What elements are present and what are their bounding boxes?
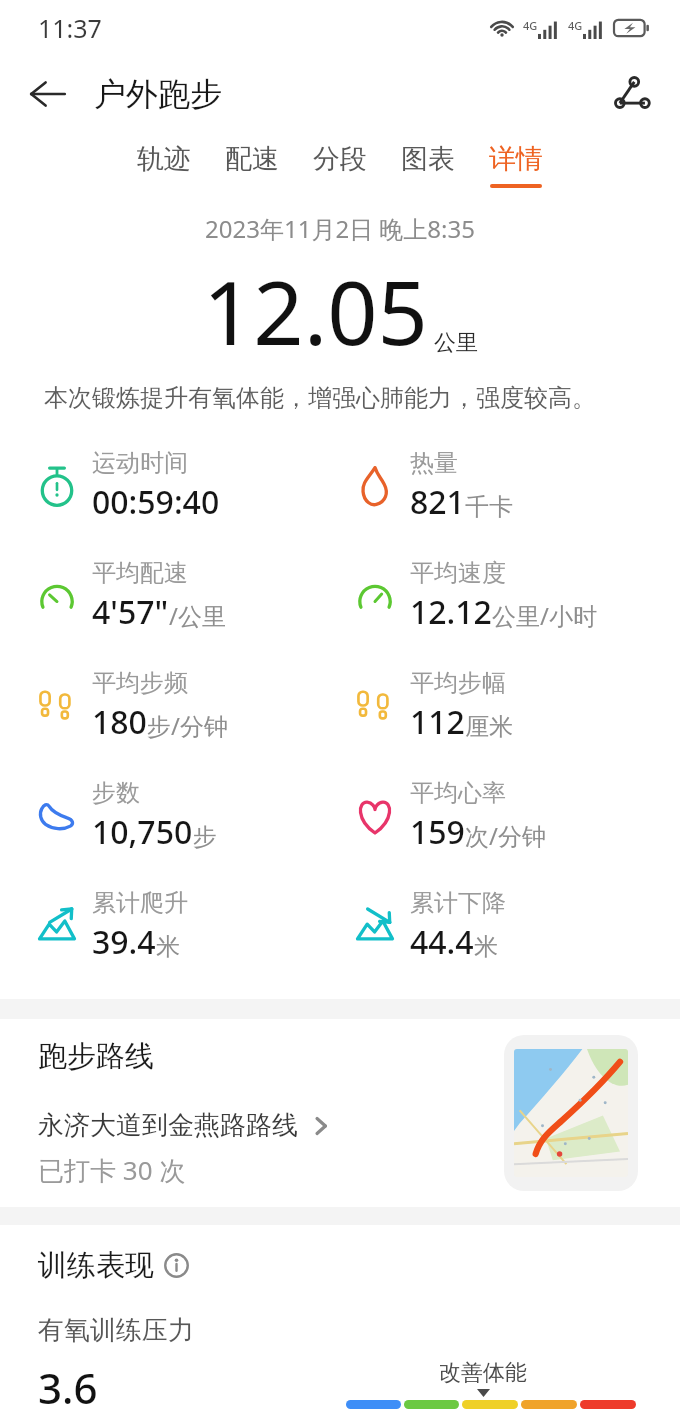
staticText: 3.6 [38, 1359, 98, 1413]
staticText: 4G [523, 18, 538, 33]
staticText: 改善体能 [439, 1359, 527, 1387]
button[interactable]: 运动时间 [34, 431, 340, 541]
staticText: 159 [410, 810, 465, 854]
button[interactable]: 图表 [384, 138, 472, 192]
staticText: 配速 [225, 142, 279, 176]
button[interactable]: 轨迹 [120, 138, 208, 192]
staticText: 112 [410, 700, 465, 744]
staticText: 步 [193, 822, 217, 852]
staticText: 平均步频 [92, 668, 188, 698]
staticText: 公里 [434, 329, 478, 357]
button[interactable]: 累计下降 [352, 871, 680, 981]
staticText: 本次锻炼提升有氧体能，增强心肺能力，强度较高。 [44, 383, 680, 413]
staticText: 44.4 [410, 920, 474, 964]
button[interactable]: 步数 [34, 761, 340, 871]
staticText: 4G [568, 18, 583, 33]
staticText: 10,750 [92, 810, 193, 854]
staticText: 步/分钟 [147, 709, 228, 742]
staticText: 39.4 [92, 920, 156, 964]
staticText: 轨迹 [137, 142, 191, 176]
staticText: 平均步幅 [410, 668, 506, 698]
button[interactable]: 平均速度 [352, 541, 680, 651]
button[interactable]: 热量 [352, 431, 680, 541]
staticText: 11:37 [38, 11, 102, 45]
button[interactable]: 配速 [208, 138, 296, 192]
staticText: 米 [474, 932, 498, 962]
staticText: 821 [410, 480, 465, 524]
button[interactable]: 分段 [296, 138, 384, 192]
button[interactable]: 训练表现 [38, 1247, 189, 1284]
staticText: 分段 [313, 142, 367, 176]
button[interactable]: 返回 [20, 66, 76, 122]
staticText: 平均配速 [92, 558, 188, 588]
staticText: 运动时间 [92, 448, 188, 478]
staticText: 12.12 [410, 590, 492, 634]
staticText: 千卡 [465, 492, 513, 522]
staticText: 跑步路线 [38, 1038, 154, 1075]
staticText: 次/分钟 [465, 819, 546, 852]
staticText: 2023年11月2日 晚上8:35 [0, 212, 680, 245]
staticText: 平均心率 [410, 778, 506, 808]
button[interactable]: 平均心率 [352, 761, 680, 871]
staticText: 00:59:40 [92, 480, 220, 524]
staticText: 累计下降 [410, 888, 506, 918]
button[interactable]: 累计爬升 [34, 871, 340, 981]
button[interactable]: 平均步频 [34, 651, 340, 761]
staticText: 热量 [410, 448, 458, 478]
button[interactable]: 跑步路线 [0, 1019, 680, 1207]
staticText: 12.05 [203, 251, 428, 371]
staticText: 有氧训练压力 [38, 1314, 194, 1347]
button[interactable]: 详情 [472, 138, 560, 192]
staticText: /公里 [169, 599, 226, 632]
staticText: 图表 [401, 142, 455, 176]
other: 说明 [164, 1253, 189, 1278]
staticText: 已打卡 30 次 [38, 1152, 186, 1188]
staticText: 永济大道到金燕路路线 [38, 1109, 298, 1142]
button[interactable]: 分享 [604, 66, 660, 122]
staticText: 详情 [489, 142, 543, 176]
staticText: 步数 [92, 778, 140, 808]
staticText: 平均速度 [410, 558, 506, 588]
staticText: 训练表现 [38, 1247, 154, 1284]
button[interactable]: 平均步幅 [352, 651, 680, 761]
staticText: 户外跑步 [94, 74, 222, 114]
staticText: 4'57" [92, 590, 169, 634]
staticText: 厘米 [465, 712, 513, 742]
staticText: 180 [92, 700, 147, 744]
staticText: 米 [156, 932, 180, 962]
staticText: 累计爬升 [92, 888, 188, 918]
button[interactable]: 平均配速 [34, 541, 340, 651]
staticText: 公里/小时 [492, 599, 597, 632]
